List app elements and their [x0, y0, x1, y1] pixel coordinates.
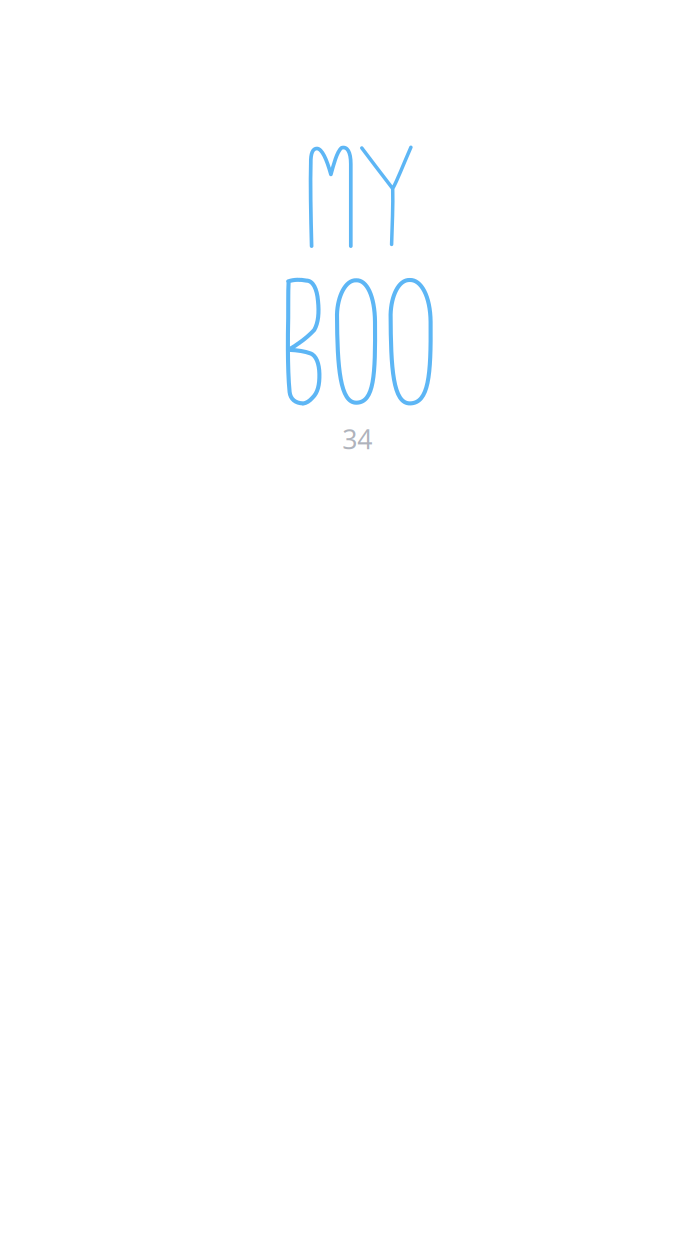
staticText: 34	[342, 421, 372, 456]
